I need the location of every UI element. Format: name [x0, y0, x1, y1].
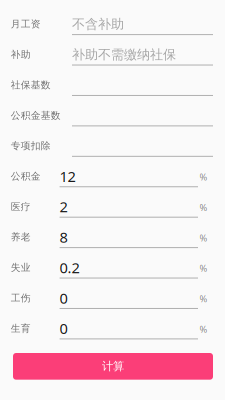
staticText: % [200, 292, 208, 305]
staticText: 失业 [11, 261, 31, 274]
staticText: 医疗 [11, 200, 31, 213]
staticText: % [200, 231, 208, 244]
staticText: % [200, 323, 208, 335]
staticText: 公积金基数 [11, 109, 61, 122]
button[interactable]: 计算 [13, 353, 213, 380]
staticText: % [200, 262, 208, 275]
staticText: 月工资 [11, 18, 41, 30]
staticText: 补助 [11, 48, 31, 61]
staticText: 补助不需缴纳社保 [72, 46, 176, 63]
staticText: 社保基数 [11, 79, 51, 91]
staticText: 0 [60, 288, 68, 308]
staticText: 8 [60, 227, 68, 247]
staticText: 养老 [11, 231, 31, 243]
staticText: % [200, 171, 208, 183]
staticText: 12 [60, 166, 76, 186]
staticText: 计算 [102, 359, 124, 373]
staticText: % [200, 201, 208, 214]
staticText: 2 [60, 197, 68, 217]
staticText: 生育 [11, 322, 31, 335]
staticText: 公积金 [11, 170, 41, 182]
staticText: 专项扣除 [11, 140, 51, 152]
staticText: 工伤 [11, 292, 31, 304]
staticText: 0.2 [60, 258, 80, 278]
staticText: 0 [60, 318, 68, 338]
staticText: 不含补助 [72, 16, 124, 32]
